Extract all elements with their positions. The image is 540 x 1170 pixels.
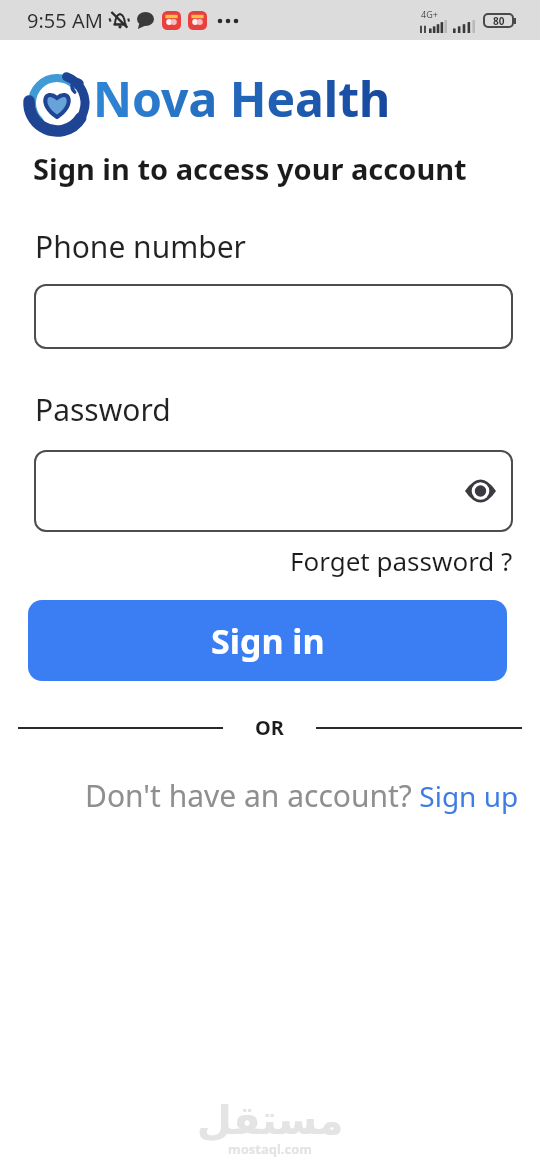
button[interactable]: Sign up [412,777,519,815]
button[interactable] [465,480,496,502]
staticText: 4G+ [421,8,438,20]
staticText: 80 [493,14,505,28]
staticText: Sign in [211,618,325,664]
button[interactable]: Forget password ? [290,543,513,578]
staticText: mostaql.com [228,1140,313,1158]
button[interactable]: Sign in [28,600,507,681]
staticText: Don't have an account? [85,775,412,816]
staticText: Password [35,389,171,430]
button[interactable] [34,450,513,532]
staticText: OR [255,714,284,741]
staticText: مستقل [197,1097,344,1144]
button[interactable] [34,284,513,349]
staticText: Nova Health [93,66,391,131]
staticText: Sign in to access your account [33,149,467,188]
staticText: 9:55 AM [27,7,103,34]
staticText: Phone number [35,226,246,267]
